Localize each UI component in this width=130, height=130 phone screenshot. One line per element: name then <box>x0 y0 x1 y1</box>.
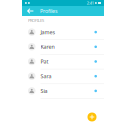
button[interactable]: Karen <box>22 40 104 54</box>
button[interactable]: Add profile <box>87 112 96 121</box>
staticText: Karen <box>40 43 54 50</box>
staticText: Profiles <box>40 7 58 15</box>
button[interactable]: Sara <box>22 69 104 84</box>
staticText: PROFILES <box>28 18 44 23</box>
staticText: Pat <box>40 58 48 65</box>
staticText: 2:41 <box>87 0 94 6</box>
button[interactable]: Back <box>25 6 36 16</box>
staticText: Sara <box>40 73 51 80</box>
staticText: Sia <box>40 87 47 94</box>
button[interactable]: Pat <box>22 54 104 69</box>
button[interactable]: James <box>22 25 104 40</box>
staticText: James <box>40 29 55 36</box>
button[interactable]: Sia <box>22 84 104 98</box>
